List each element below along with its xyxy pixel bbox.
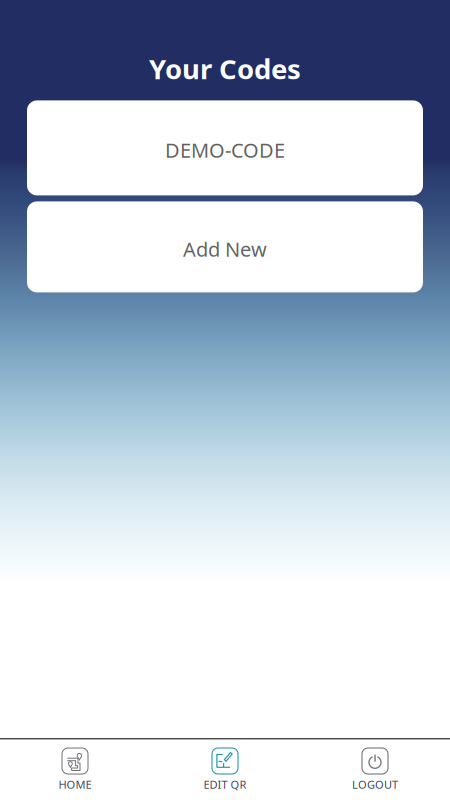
staticText: DEMO-CODE xyxy=(165,136,285,163)
button[interactable]: EDIT QR xyxy=(150,738,300,800)
button[interactable]: LOGOUT xyxy=(300,738,450,800)
staticText: EDIT QR xyxy=(203,777,246,792)
button[interactable]: Add New xyxy=(27,201,423,292)
staticText: LOGOUT xyxy=(352,777,398,792)
button[interactable]: DEMO-CODE xyxy=(27,100,423,195)
staticText: Your Codes xyxy=(149,50,301,87)
staticText: Add New xyxy=(183,235,267,262)
staticText: HOME xyxy=(58,777,91,792)
button[interactable]: HOME xyxy=(0,738,150,800)
